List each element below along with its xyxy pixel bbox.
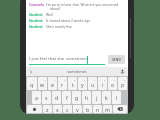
staticText: I just feel that she (29, 56, 66, 62)
button[interactable]: g (72, 91, 81, 104)
button[interactable]: Student: (29, 12, 125, 16)
button[interactable]: a (32, 91, 41, 104)
staticText: w (40, 81, 45, 88)
staticText: n (96, 106, 100, 113)
button[interactable]: Backspace (113, 105, 127, 113)
button[interactable]: v (73, 105, 82, 113)
staticText: 0 (124, 78, 126, 81)
staticText: t (72, 81, 74, 88)
staticText: x (56, 106, 59, 113)
staticText: d (55, 94, 59, 101)
staticText: 6 (84, 78, 86, 81)
staticText: l (116, 94, 118, 101)
staticText: r (61, 81, 64, 88)
staticText: Student: (29, 18, 45, 22)
staticText: SEND (112, 57, 121, 62)
staticText: 9 (114, 78, 116, 81)
staticText: Counselor: (29, 2, 45, 6)
staticText: q (30, 81, 34, 88)
staticText: z (46, 106, 49, 113)
staticText: i (102, 81, 104, 88)
button[interactable]: Shift (27, 105, 42, 113)
staticText: 2 (44, 78, 46, 81)
staticText: j (96, 94, 98, 101)
staticText: about? (50, 6, 61, 10)
button[interactable]: l (112, 91, 121, 104)
staticText: 1 (33, 78, 35, 81)
button[interactable]: 2 (38, 77, 47, 90)
button[interactable]: 8 (98, 77, 107, 90)
staticText: She's mostly fine (46, 24, 72, 28)
staticText: a (35, 94, 38, 101)
staticText: m (105, 106, 110, 113)
staticText: I'm sorry to hear that. What are you con… (46, 2, 119, 6)
staticText: sometimes (66, 56, 88, 62)
button[interactable]: Voice input (119, 68, 126, 75)
staticText: It started about 2 weeks ago (46, 18, 91, 22)
staticText: u (91, 81, 95, 88)
button[interactable]: SEND (108, 55, 125, 64)
staticText: k (105, 94, 108, 101)
button[interactable]: s (42, 91, 51, 104)
staticText: c (66, 106, 69, 113)
staticText: e (51, 81, 54, 88)
button[interactable]: j (92, 91, 101, 104)
staticText: p (121, 81, 125, 88)
button[interactable]: Student: (29, 24, 125, 28)
button[interactable]: 4 (58, 77, 67, 90)
staticText: 3 (54, 78, 56, 81)
button[interactable]: Student: (29, 18, 125, 22)
button[interactable]: d (52, 91, 61, 104)
staticText: b (86, 106, 90, 113)
staticText: 4 (64, 78, 66, 81)
button[interactable]: n (93, 105, 102, 113)
button[interactable]: 9 (108, 77, 117, 90)
button[interactable]: 3 (48, 77, 57, 90)
button[interactable]: Counselor: (29, 2, 125, 10)
button[interactable]: sometimes (67, 69, 87, 74)
button[interactable]: 0 (118, 77, 127, 90)
button[interactable]: m (103, 105, 112, 113)
button[interactable]: h (82, 91, 91, 104)
button[interactable]: f (62, 91, 71, 104)
button[interactable]: I just feel that she (29, 54, 105, 65)
button[interactable]: 1 (27, 77, 37, 90)
staticText: Student: (29, 12, 45, 16)
button[interactable]: 6 (78, 77, 87, 90)
button[interactable]: More suggestions (28, 69, 34, 75)
staticText: g (75, 94, 79, 101)
staticText: o (111, 81, 115, 88)
staticText: v (76, 106, 79, 113)
staticText: 7 (94, 78, 96, 81)
staticText: Student: (29, 24, 45, 28)
staticText: 5 (74, 78, 76, 81)
button[interactable]: 5 (68, 77, 77, 90)
button[interactable]: z (43, 105, 52, 113)
staticText: sometimes (67, 69, 87, 74)
staticText: h (85, 94, 89, 101)
staticText: 8 (104, 78, 106, 81)
button[interactable]: x (53, 105, 62, 113)
button[interactable]: b (83, 105, 92, 113)
button[interactable]: 7 (88, 77, 97, 90)
button[interactable]: c (63, 105, 72, 113)
staticText: Well (46, 12, 53, 16)
button[interactable]: k (102, 91, 111, 104)
staticText: f (66, 94, 68, 101)
staticText: s (45, 94, 48, 101)
staticText: y (81, 81, 84, 88)
